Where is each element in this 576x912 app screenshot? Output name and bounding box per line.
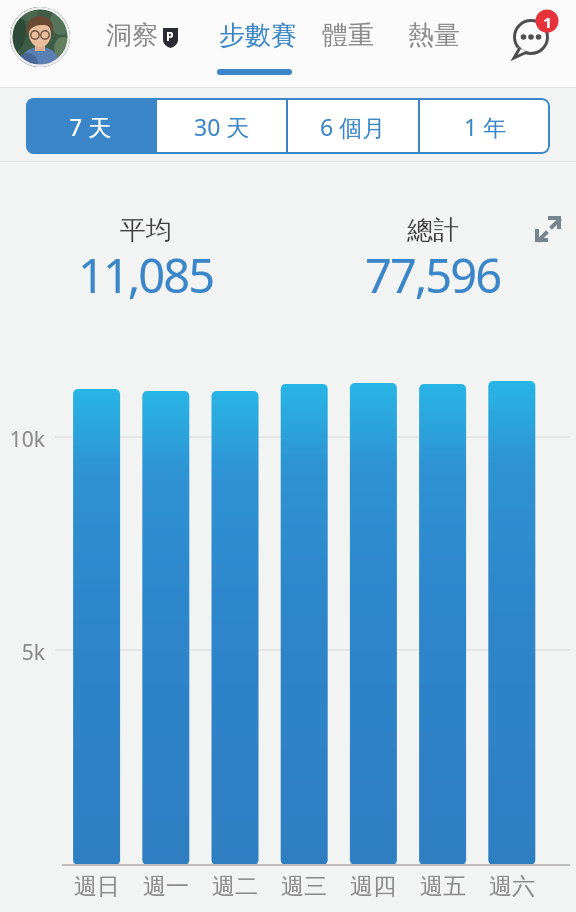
staticText: 週四 [343,872,403,901]
staticText: 總計 [407,214,459,247]
button[interactable]: 體重 [322,19,374,52]
staticText: 7 天 [69,111,112,142]
staticText: 77,596 [365,243,501,307]
staticText: 週一 [136,872,196,901]
staticText: 週六 [482,872,542,901]
staticText: 11,085 [78,243,214,307]
button[interactable]: 7 天 [26,98,155,154]
staticText: 6 個月 [320,111,386,142]
button[interactable]: 平均 [0,214,292,311]
staticText: 週五 [413,872,473,901]
staticText: 1 [543,12,552,32]
staticText: 洞察 [106,19,158,52]
staticText: 步數賽 [219,19,297,52]
staticText: P [166,28,174,44]
button[interactable]: 30 天 [157,98,286,154]
staticText: 週二 [205,872,265,901]
staticText: 平均 [120,214,172,247]
staticText: 30 天 [194,111,250,142]
button[interactable]: 1 年 [420,98,550,154]
staticText: 週日 [67,872,127,901]
button[interactable] [10,7,70,67]
button[interactable]: 6 個月 [288,98,418,154]
staticText: 1 年 [464,111,507,142]
button[interactable] [505,8,565,68]
staticText: 5k [2,638,45,667]
button[interactable]: 熱量 [408,19,460,52]
staticText: 10k [2,425,45,454]
button[interactable]: 步數賽 [210,10,304,80]
button[interactable] [532,213,566,247]
staticText: 週三 [274,872,334,901]
